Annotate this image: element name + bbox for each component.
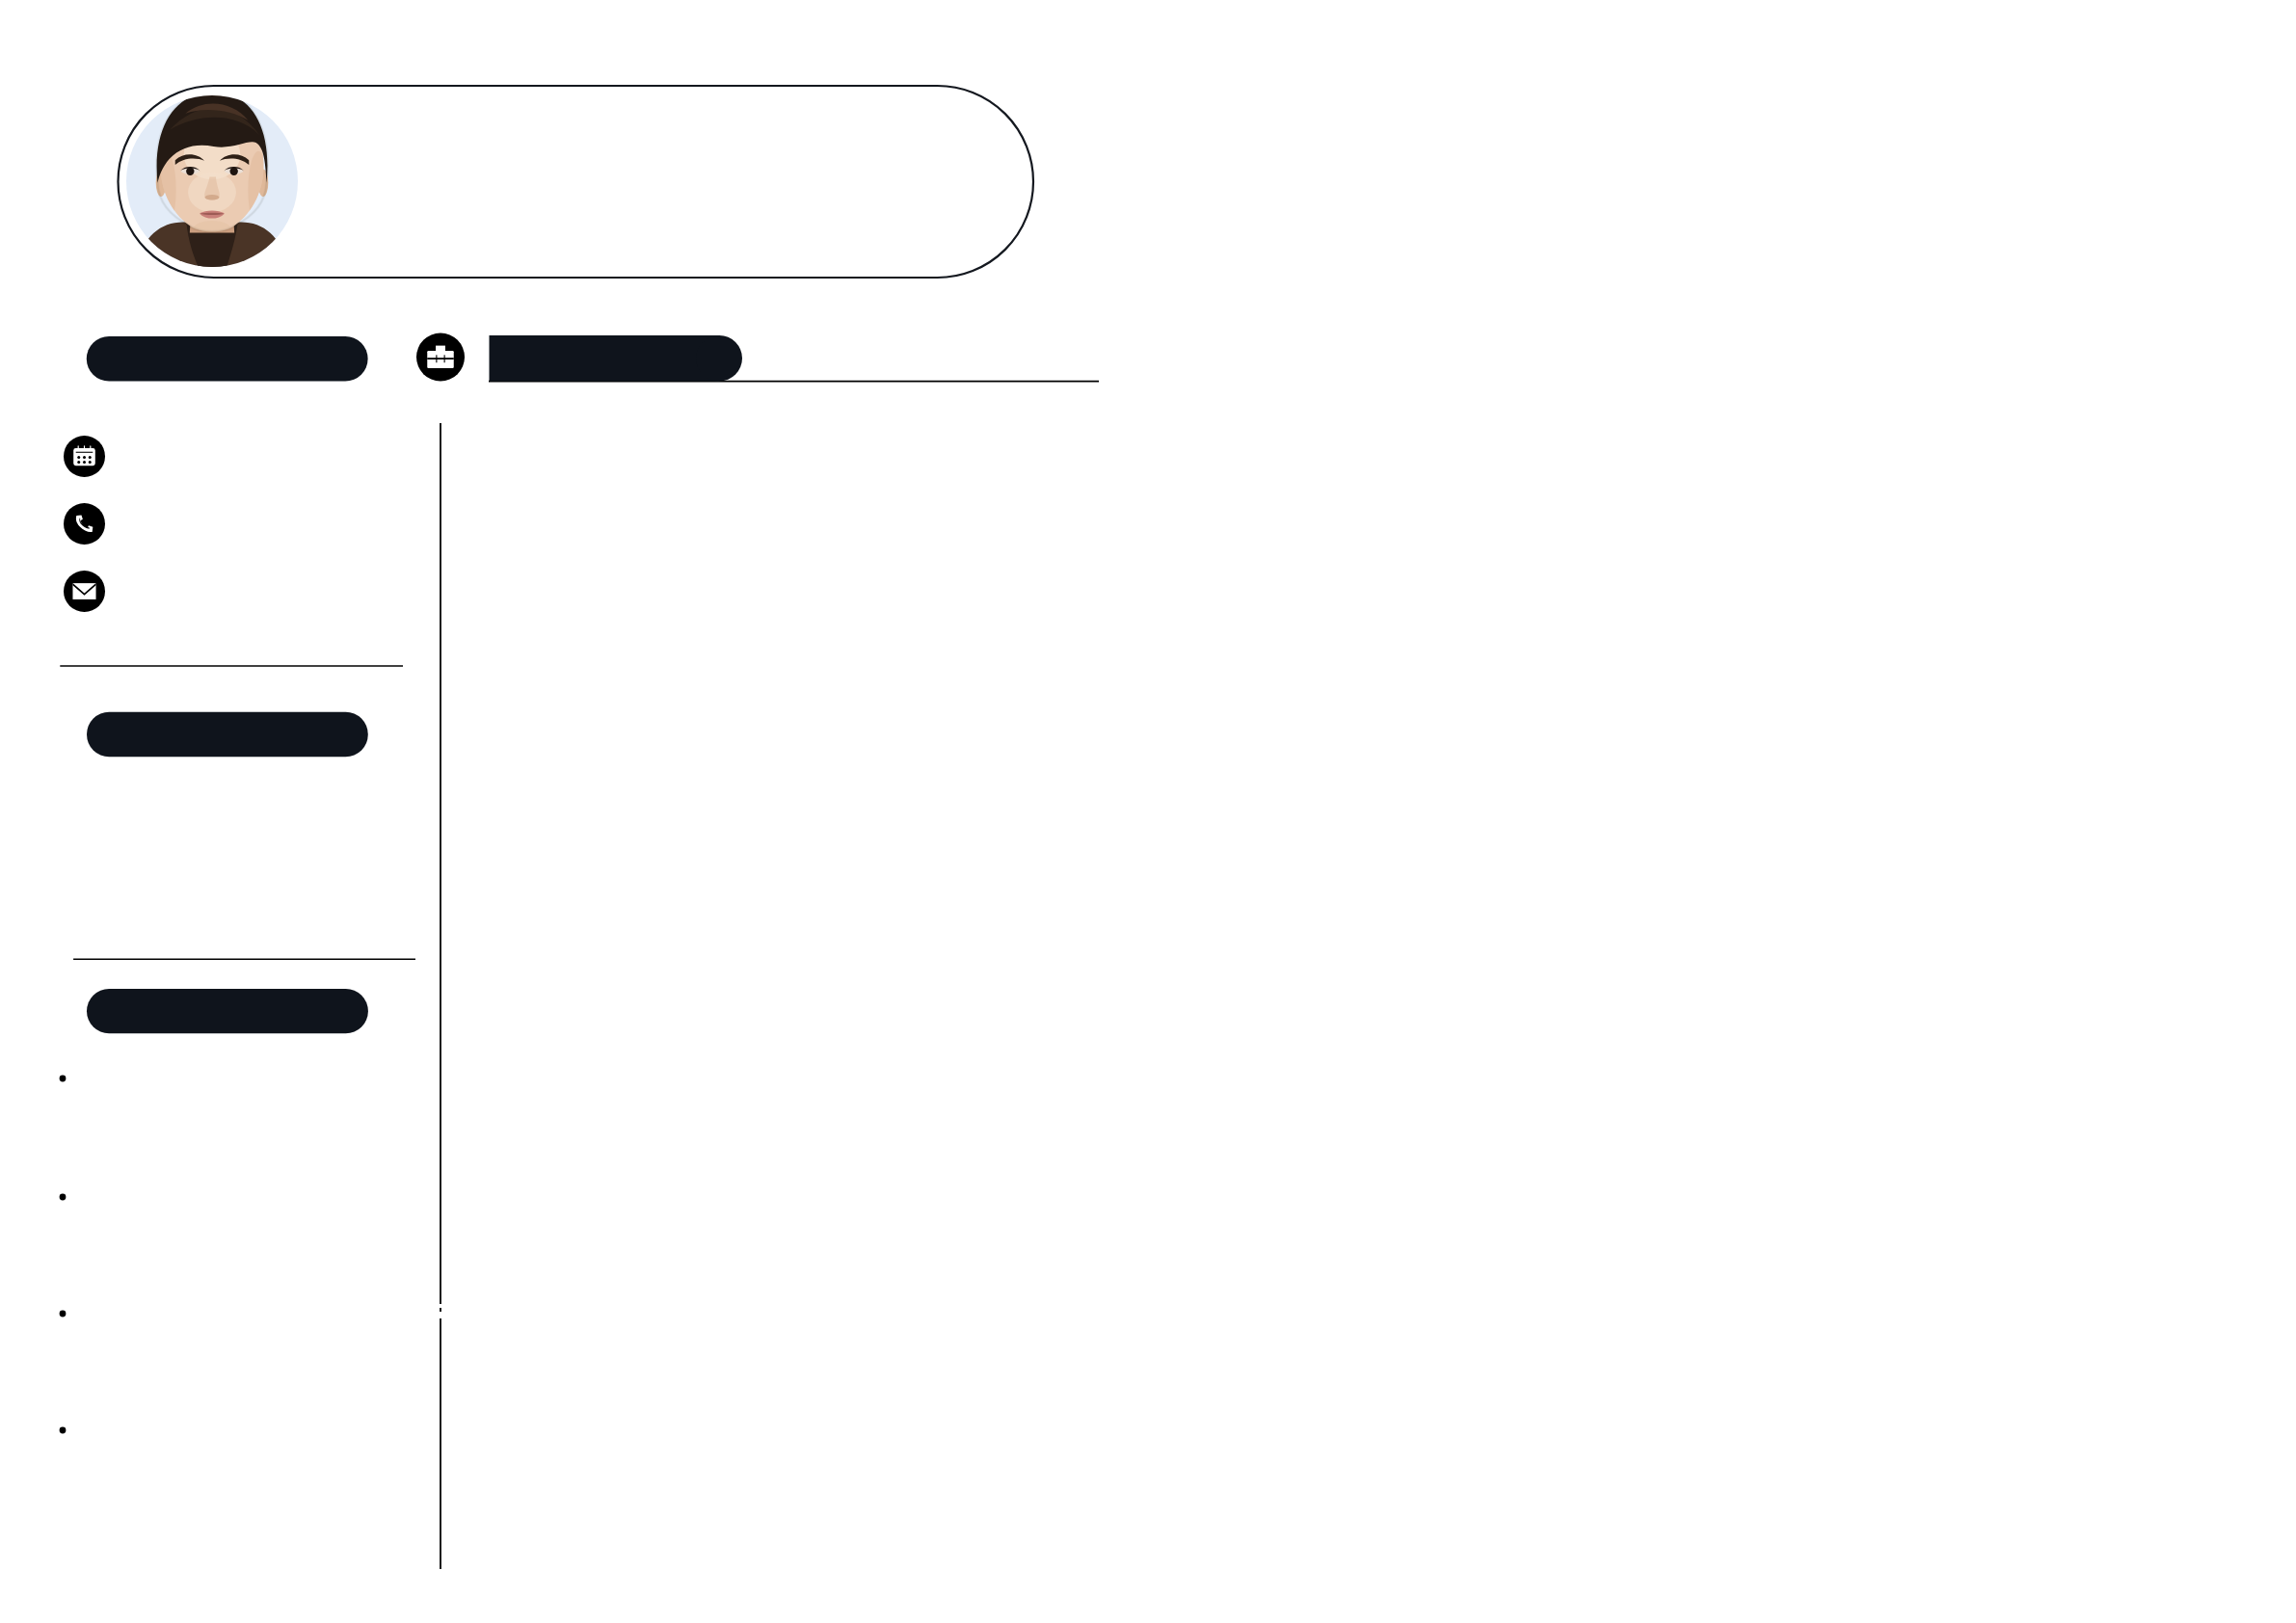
button[interactable]: Work experience — [416, 333, 465, 382]
button[interactable]: Phone number — [64, 503, 105, 545]
button[interactable]: Skills section heading — [87, 989, 368, 1033]
button[interactable]: Skill item 4 — [54, 1422, 372, 1440]
button[interactable]: Contact section heading — [87, 336, 368, 382]
button[interactable]: Skill item 3 — [54, 1305, 372, 1323]
button[interactable]: Date of birth — [64, 436, 105, 477]
button[interactable]: Skill item 1 — [54, 1070, 372, 1088]
button[interactable]: Skill item 2 — [54, 1188, 372, 1207]
button[interactable]: Experience entry heading — [489, 335, 742, 382]
button[interactable]: Email address — [64, 571, 105, 612]
button[interactable]: Profile header — [118, 86, 1033, 278]
button[interactable]: Education section heading — [87, 712, 368, 757]
